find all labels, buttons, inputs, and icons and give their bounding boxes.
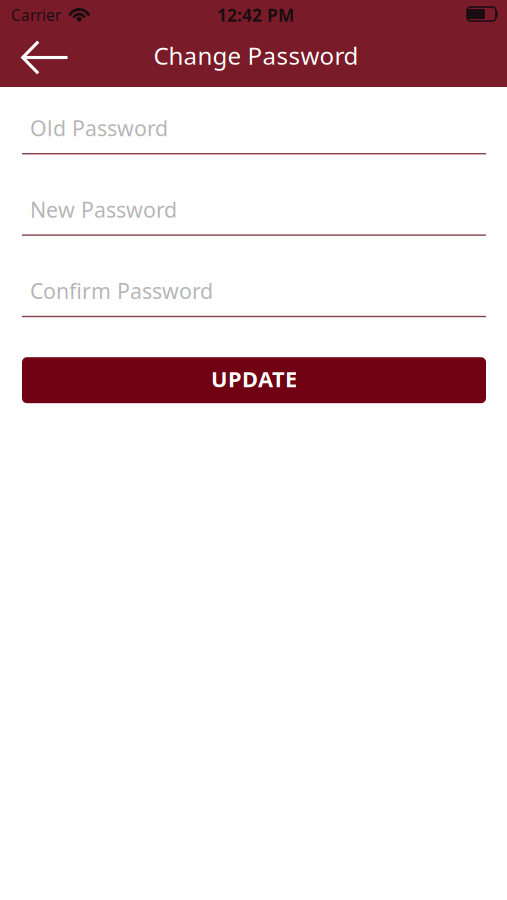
staticText: UPDATE <box>211 364 297 394</box>
staticText: Confirm Password <box>30 276 213 305</box>
button[interactable]: UPDATE <box>22 357 486 403</box>
staticText: New Password <box>30 195 177 224</box>
staticText: 12:42 PM <box>217 3 294 27</box>
staticText: Carrier <box>11 5 61 25</box>
staticText: Old Password <box>30 113 168 143</box>
button[interactable]: New Password <box>22 190 486 236</box>
staticText: Change Password <box>153 39 358 72</box>
button[interactable]: Confirm Password <box>22 272 486 317</box>
button[interactable]: Back <box>0 27 83 87</box>
button[interactable]: Old Password <box>22 109 486 154</box>
